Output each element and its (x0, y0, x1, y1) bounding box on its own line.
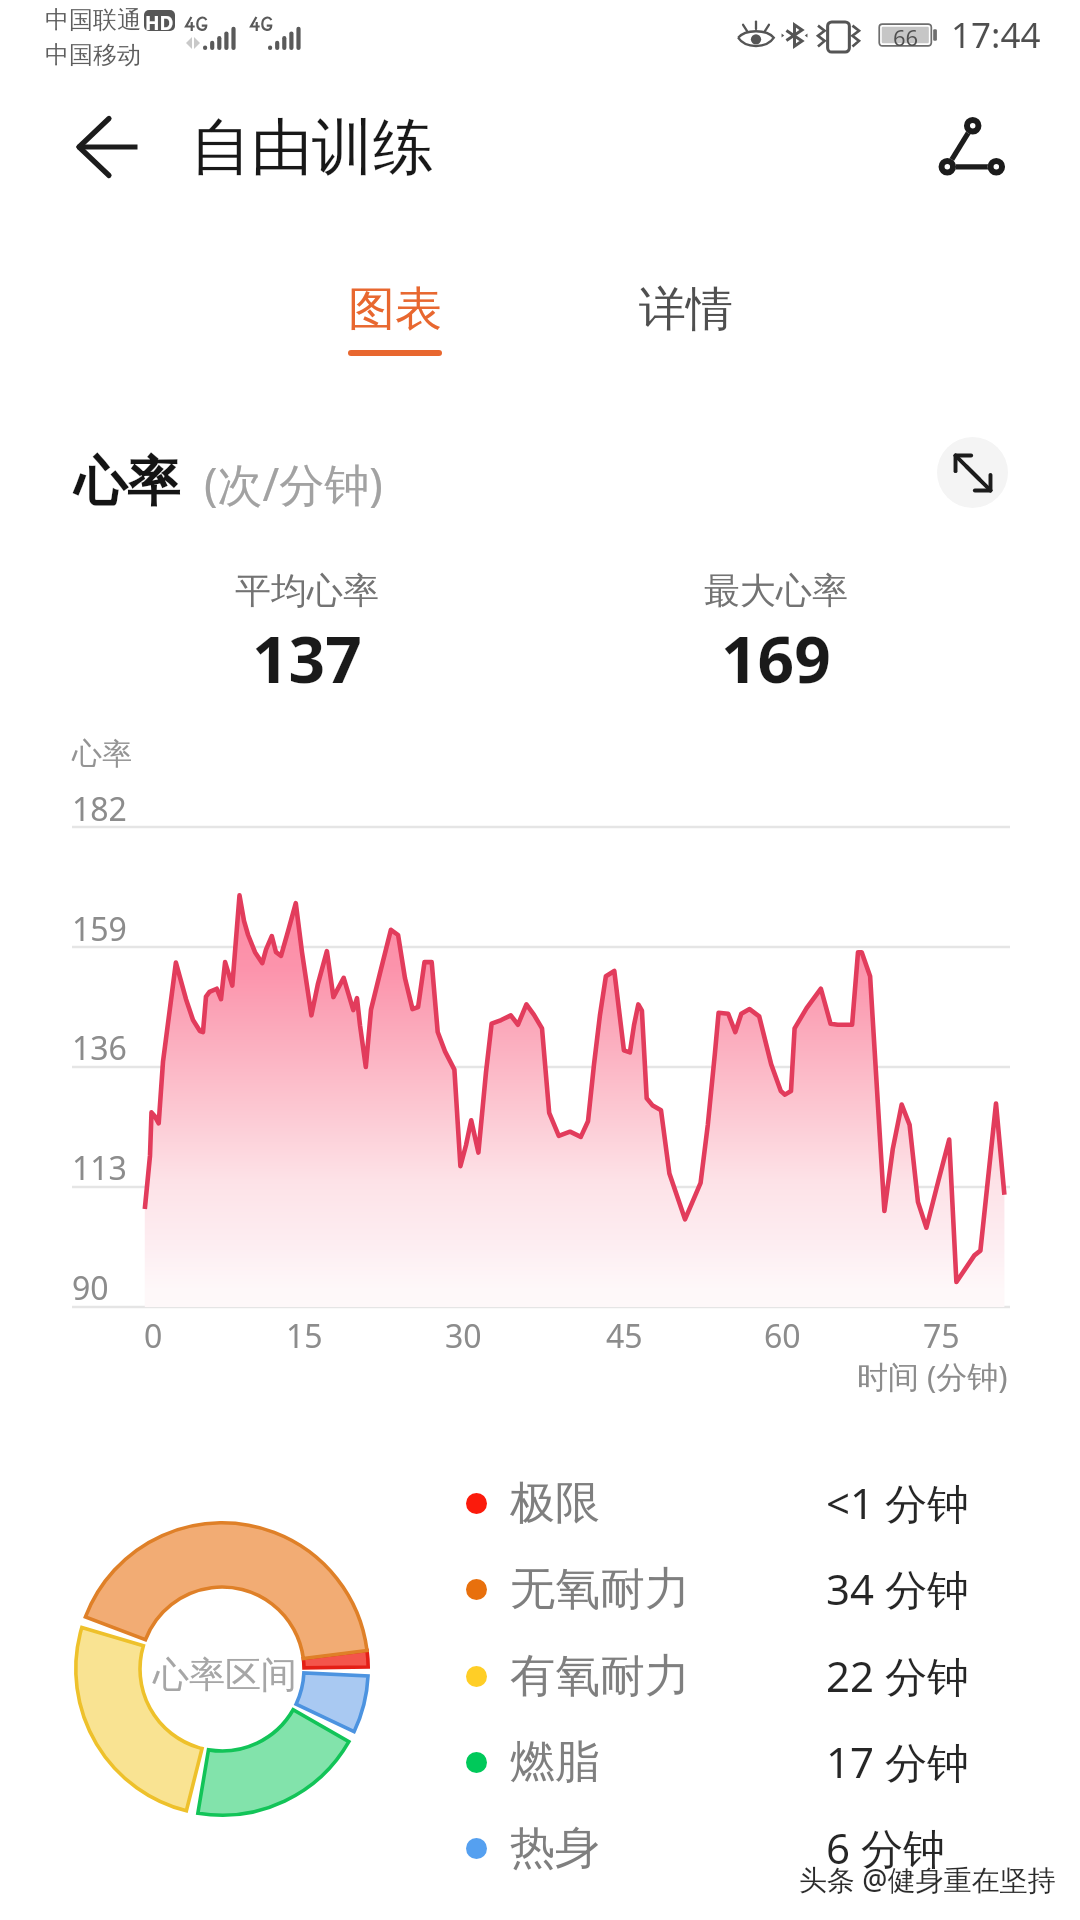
staticText: 60 (764, 1314, 801, 1358)
staticText: 心率区间 (153, 1652, 297, 1697)
staticText: 15 (286, 1314, 323, 1358)
button[interactable]: Share (930, 106, 1016, 192)
staticText: HD (145, 10, 174, 31)
staticText: 中国移动 (45, 40, 141, 70)
staticText: 34 分钟 (826, 1560, 969, 1617)
staticText: 热身 (510, 1820, 600, 1877)
button[interactable]: 有氧耐力 (455, 1633, 1015, 1719)
button[interactable]: 热身 (455, 1805, 1015, 1891)
staticText: 时间 (分钟) (857, 1355, 1008, 1397)
staticText: 心率 (72, 735, 132, 773)
staticText: 无氧耐力 (510, 1561, 690, 1618)
staticText: 113 (72, 1146, 127, 1190)
staticText: 90 (72, 1266, 109, 1310)
staticText: 136 (72, 1026, 127, 1070)
staticText: 22 分钟 (826, 1647, 969, 1704)
staticText: 45 (606, 1314, 643, 1358)
staticText: 燃脂 (510, 1734, 600, 1791)
button[interactable]: 燃脂 (455, 1719, 1015, 1805)
staticText: 详情 (639, 280, 733, 339)
staticText: 75 (923, 1314, 960, 1358)
staticText: 图表 (348, 280, 442, 339)
staticText: 17:44 (951, 11, 1041, 59)
staticText: (次/分钟) (204, 453, 383, 514)
button[interactable]: Expand chart (937, 437, 1008, 508)
button[interactable]: Back (58, 97, 158, 197)
staticText: 6 分钟 (826, 1819, 945, 1876)
staticText: 极限 (510, 1475, 600, 1532)
button[interactable]: 详情 (586, 258, 786, 373)
staticText: 自由训练 (190, 109, 434, 186)
staticText: 182 (72, 787, 127, 831)
staticText: 159 (72, 907, 127, 951)
staticText: 137 (252, 615, 362, 702)
staticText: 中国联通 (45, 5, 141, 35)
staticText: 17 分钟 (826, 1733, 969, 1790)
staticText: 169 (721, 615, 831, 702)
button[interactable]: 无氧耐力 (455, 1546, 1015, 1632)
button[interactable]: 极限 (455, 1460, 1015, 1546)
staticText: 平均心率 (235, 568, 379, 613)
staticText: 头条 @健身重在坚持 (799, 1860, 1056, 1898)
button[interactable]: 图表 (295, 258, 495, 373)
staticText: 有氧耐力 (510, 1648, 690, 1705)
staticText: 心率 (74, 449, 180, 516)
staticText: 0 (144, 1314, 163, 1358)
staticText: <1 分钟 (826, 1474, 969, 1531)
staticText: 30 (445, 1314, 482, 1358)
staticText: 最大心率 (704, 568, 848, 613)
staticText: 66 (893, 22, 919, 48)
